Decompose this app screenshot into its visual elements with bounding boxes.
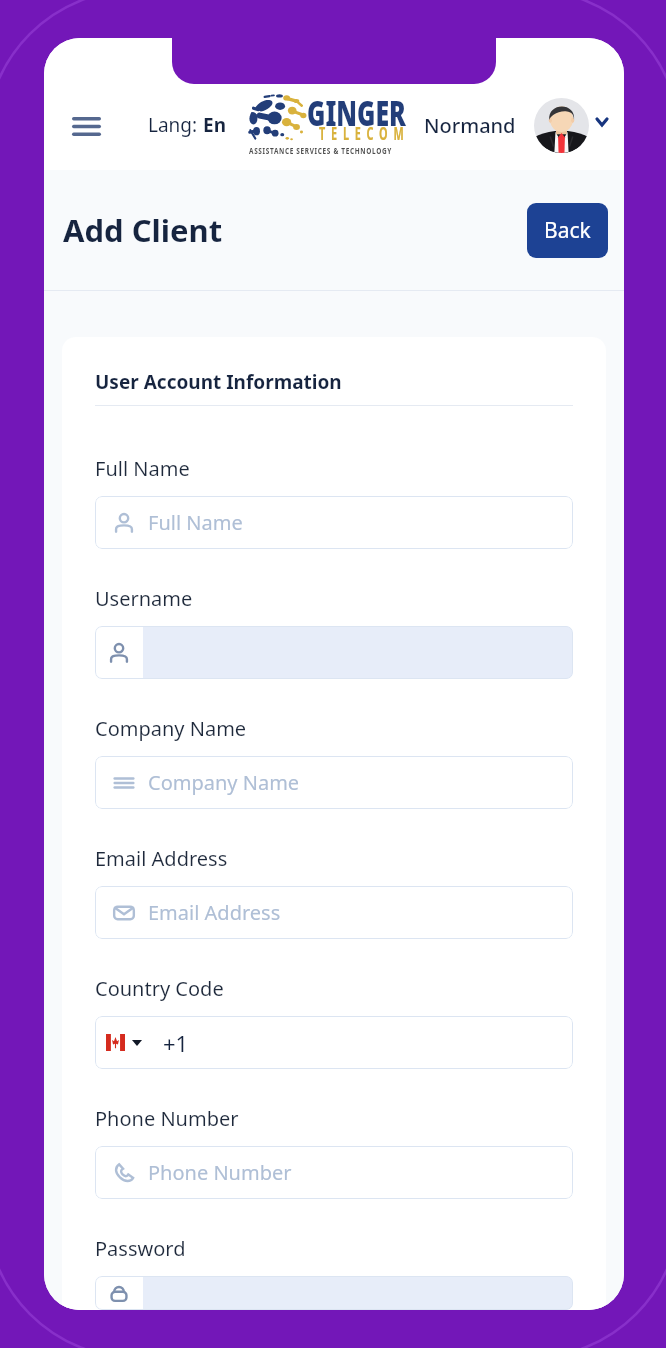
staticText: Phone Number: [148, 1159, 292, 1186]
button[interactable]: Account menu: [586, 106, 618, 138]
staticText: Country Code: [95, 975, 224, 1002]
staticText: Normand: [424, 112, 516, 139]
staticText: Add Client: [63, 209, 223, 251]
staticText: Phone Number: [95, 1105, 239, 1132]
button[interactable]: Ginger Telecom: [246, 88, 476, 156]
staticText: Lang:: [148, 112, 203, 138]
button[interactable]: Back: [527, 203, 608, 258]
staticText: Email Address: [95, 845, 228, 872]
staticText: Password: [95, 1235, 186, 1262]
staticText: GINGER: [307, 89, 406, 137]
button[interactable]: [95, 626, 573, 679]
button[interactable]: Company Name: [95, 756, 573, 809]
button[interactable]: Menu: [62, 104, 110, 148]
button[interactable]: +1: [95, 1016, 573, 1069]
button[interactable]: Email Address: [95, 886, 573, 939]
staticText: Email Address: [148, 899, 281, 926]
button[interactable]: [95, 1276, 573, 1310]
button[interactable]: Full Name: [95, 496, 573, 549]
staticText: Full Name: [148, 509, 243, 536]
staticText: ASSISTANCE SERVICES & TECHNOLOGY: [249, 144, 392, 156]
button[interactable]: Phone Number: [95, 1146, 573, 1199]
staticText: Company Name: [95, 715, 247, 742]
staticText: Company Name: [148, 769, 300, 796]
staticText: Full Name: [95, 455, 190, 482]
staticText: En: [203, 112, 226, 138]
staticText: Back: [544, 216, 591, 245]
staticText: User Account Information: [95, 369, 342, 395]
staticText: +1: [163, 1028, 189, 1058]
staticText: TELECOM: [319, 122, 410, 145]
button[interactable]: Lang:: [148, 108, 226, 142]
button[interactable]: Profile: [534, 98, 589, 153]
staticText: Username: [95, 585, 193, 612]
